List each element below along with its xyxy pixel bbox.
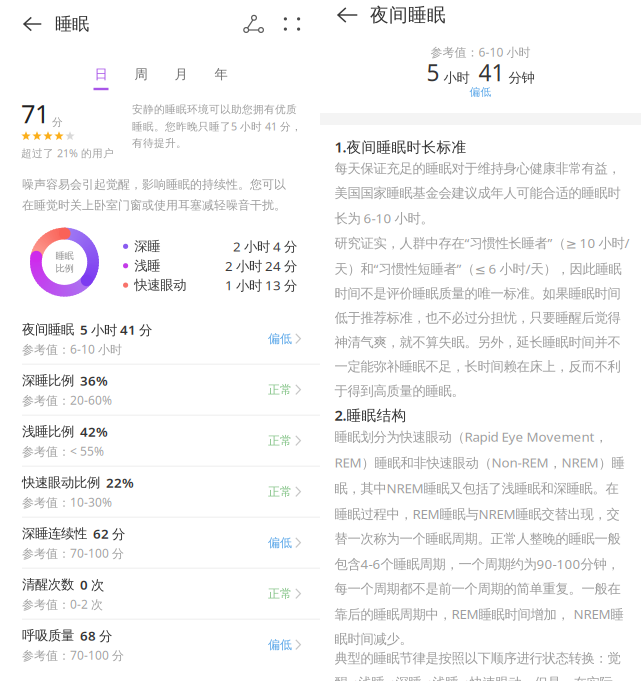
staticText: 偏低	[268, 535, 292, 550]
staticText: 超过了 21% 的用户	[21, 146, 114, 160]
staticText: 快速眼动比例	[22, 474, 100, 491]
staticText: 42%	[80, 423, 108, 440]
staticText: 日	[94, 66, 107, 82]
staticText: 偏低	[469, 85, 491, 98]
staticText: 睡眠划分为快速眼动（Rapid Eye Movement， REM）睡眠和非快速…	[334, 428, 624, 647]
staticText: 22%	[106, 474, 134, 491]
staticText: 分	[52, 116, 63, 129]
staticText: 月	[174, 66, 187, 82]
staticText: 比例	[55, 263, 73, 274]
staticText: 62 分	[93, 525, 125, 542]
staticText: 小时	[443, 70, 469, 86]
staticText: 5	[426, 57, 439, 87]
button[interactable]: 深睡比例	[0, 365, 320, 415]
staticText: 浅睡	[134, 258, 160, 274]
staticText: 参考值：20-60%	[22, 392, 112, 408]
staticText: 夜间睡眠	[22, 321, 74, 338]
button[interactable]: 呼吸质量	[0, 620, 320, 670]
staticText: 2 小时 4 分	[233, 237, 297, 255]
staticText: 参考值：70-100 分	[22, 647, 124, 663]
staticText: 呼吸质量	[22, 627, 74, 644]
staticText: 年	[214, 66, 227, 82]
staticText: 参考值：0-2 次	[22, 596, 103, 612]
staticText: 参考值：70-100 分	[22, 545, 124, 561]
staticText: 2.睡眠结构	[334, 405, 406, 425]
staticText: 正常	[268, 433, 292, 448]
staticText: 36%	[80, 372, 108, 389]
staticText: 偏低	[268, 637, 292, 652]
staticText: 夜间睡眠	[370, 3, 446, 26]
staticText: 1.夜间睡眠时长标准	[334, 137, 466, 156]
button[interactable]: 分享	[234, 0, 274, 48]
staticText: 参考值：6-10 小时	[22, 341, 122, 357]
staticText: 正常	[268, 382, 292, 397]
staticText: 安静的睡眠环境可以助您拥有优质 睡眠。您昨晚只睡了5 小时 41 分， 有待提升…	[132, 103, 302, 150]
staticText: 71	[21, 97, 49, 130]
staticText: 周	[134, 66, 147, 82]
staticText: 睡眠	[55, 13, 89, 35]
staticText: 深睡连续性	[22, 525, 87, 542]
staticText: 快速眼动	[134, 277, 186, 293]
button[interactable]: 夜间睡眠	[0, 314, 320, 364]
staticText: 41	[478, 57, 504, 87]
button[interactable]: 年	[201, 65, 241, 91]
staticText: 浅睡比例	[22, 423, 74, 440]
button[interactable]: 深睡连续性	[0, 518, 320, 568]
button[interactable]: 清醒次数	[0, 569, 320, 619]
staticText: 睡眠	[55, 250, 73, 262]
staticText: 深睡	[134, 238, 160, 255]
staticText: 分钟	[508, 70, 534, 86]
button[interactable]: 更多	[274, 0, 310, 48]
button[interactable]: 返回	[320, 0, 370, 30]
staticText: 正常	[268, 586, 292, 601]
button[interactable]: 浅睡比例	[0, 416, 320, 466]
staticText: 5 小时 41 分	[80, 321, 152, 338]
button[interactable]: 快速眼动比例	[0, 467, 320, 517]
button[interactable]: 月	[161, 65, 201, 91]
staticText: 参考值：< 55%	[22, 443, 104, 459]
staticText: 1 小时 13 分	[225, 276, 297, 294]
staticText: 参考值：6-10 小时	[430, 44, 530, 60]
button[interactable]: 日	[81, 65, 121, 91]
button[interactable]: 周	[121, 65, 161, 91]
staticText: 68 分	[80, 627, 112, 644]
staticText: 典型的睡眠节律是按照以下顺序进行状态转换：觉 醒→浅睡→深睡→浅睡→快速眼动。但…	[334, 650, 620, 681]
staticText: 清醒次数	[22, 576, 74, 593]
button[interactable]: 返回	[0, 0, 55, 48]
staticText: 研究证实，人群中存在“习惯性长睡者”（≥ 10 小时/ 天）和“习惯性短睡者”（…	[334, 234, 629, 399]
staticText: 正常	[268, 484, 292, 499]
staticText: 每天保证充足的睡眠对于维持身心健康非常有益， 美国国家睡眠基金会建议成年人可能合…	[334, 160, 620, 227]
staticText: 偏低	[268, 331, 292, 346]
staticText: 0 次	[80, 576, 104, 593]
staticText: 2 小时 24 分	[225, 257, 297, 275]
staticText: 深睡比例	[22, 372, 74, 389]
staticText: 噪声容易会引起觉醒，影响睡眠的持续性。您可以 在睡觉时关上卧室门窗或使用耳塞减轻…	[22, 177, 286, 213]
staticText: 参考值：10-30%	[22, 494, 112, 510]
